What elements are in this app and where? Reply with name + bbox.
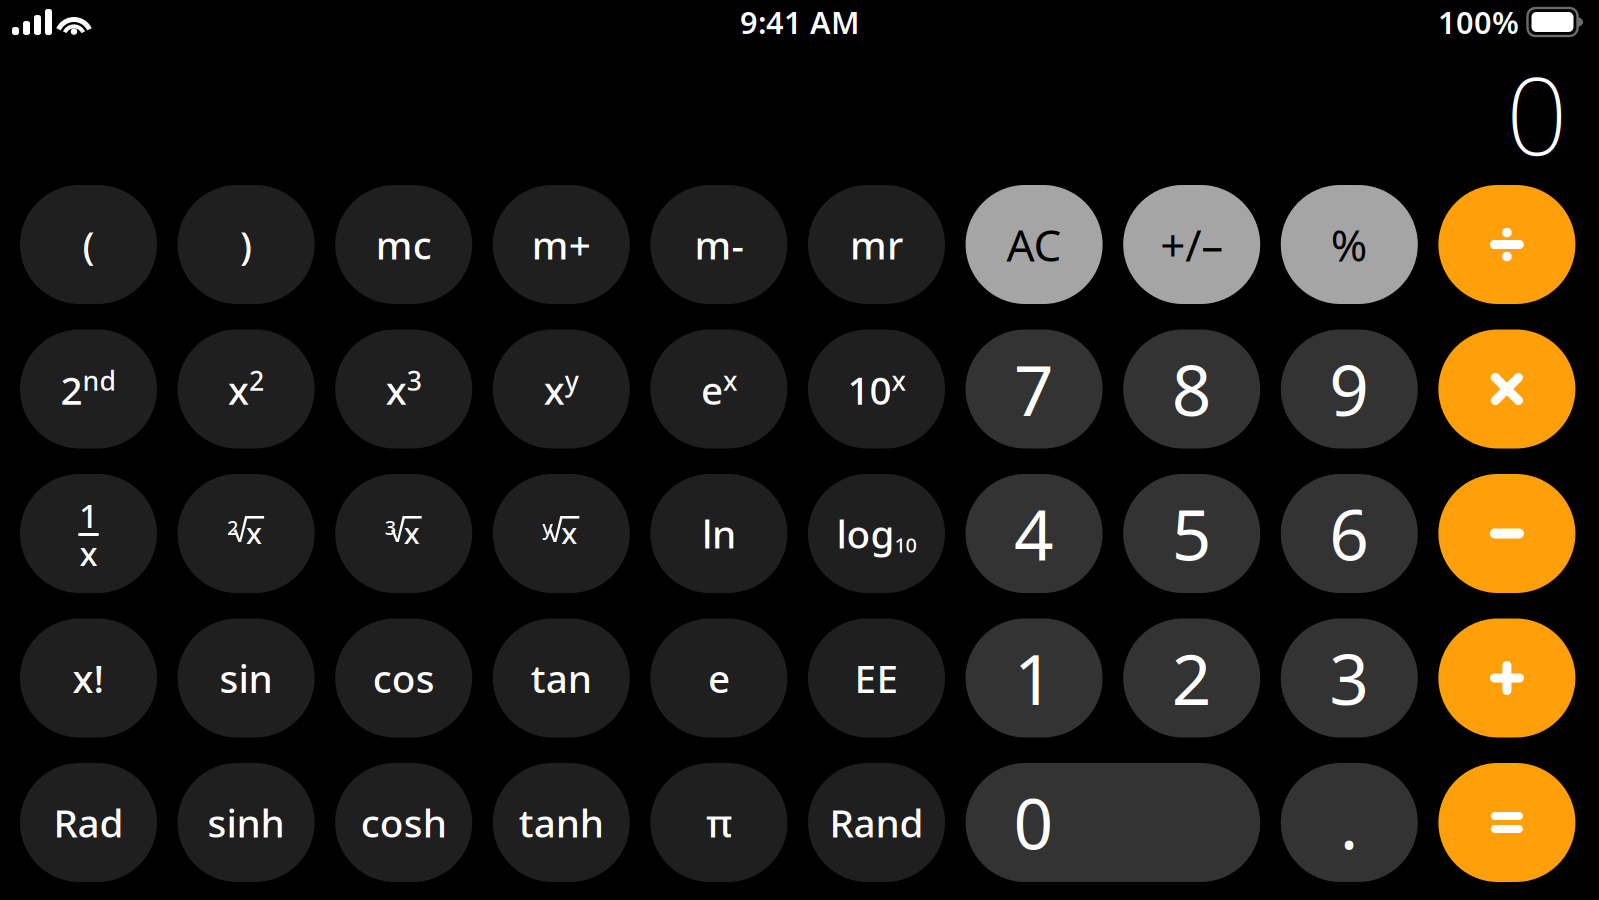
staticText: x (79, 531, 97, 575)
staticText: 9 (1329, 343, 1369, 435)
button[interactable]: cosh (335, 763, 472, 882)
staticText: log10 (836, 508, 916, 559)
staticText: x (404, 513, 420, 552)
staticText: 2 (227, 514, 238, 541)
button[interactable]: 1 (20, 474, 157, 593)
staticText: ln (702, 508, 736, 559)
staticText: m+ (532, 219, 591, 270)
staticText: 3 (385, 514, 396, 541)
staticText: m- (694, 219, 743, 270)
staticText: mc (376, 219, 432, 270)
button[interactable]: 2 (1123, 618, 1260, 737)
button[interactable]: x2 (178, 329, 315, 448)
staticText: Rand (829, 797, 923, 848)
button[interactable]: mr (808, 185, 945, 304)
button[interactable]: +/– (1123, 185, 1260, 304)
button[interactable]: 10x (808, 329, 945, 448)
staticText: . (1340, 776, 1359, 869)
button[interactable]: 3 (335, 474, 472, 593)
button[interactable]: ( (20, 185, 157, 304)
button[interactable]: . (1281, 763, 1418, 882)
staticText: x! (72, 652, 104, 704)
button[interactable]: Plus (1438, 618, 1575, 737)
staticText: tanh (519, 797, 604, 848)
button[interactable]: ex (650, 329, 787, 448)
button[interactable]: xy (493, 329, 630, 448)
staticText: y (542, 514, 553, 541)
button[interactable]: log10 (808, 474, 945, 593)
button[interactable]: x! (20, 618, 157, 737)
staticText: EE (854, 652, 898, 704)
button[interactable]: 1 (966, 618, 1103, 737)
staticText: 7 (1014, 343, 1054, 435)
button[interactable]: 5 (1123, 474, 1260, 593)
button[interactable]: sin (178, 618, 315, 737)
button[interactable]: Equals (1438, 763, 1575, 882)
staticText: ) (240, 219, 252, 270)
staticText: 3 (1329, 632, 1369, 724)
staticText: 5 (1172, 487, 1212, 580)
staticText: cos (373, 652, 435, 704)
staticText: 0 (1014, 776, 1054, 869)
staticText: 2nd (60, 363, 116, 415)
button[interactable]: 6 (1281, 474, 1418, 593)
staticText: x (561, 513, 577, 552)
staticText: x (246, 513, 262, 552)
staticText: sinh (208, 797, 285, 848)
staticText: Rad (53, 797, 123, 848)
button[interactable]: 2 (178, 474, 315, 593)
button[interactable]: π (650, 763, 787, 882)
staticText: +/– (1160, 215, 1223, 274)
button[interactable]: % (1281, 185, 1418, 304)
button[interactable]: ) (178, 185, 315, 304)
staticText: ex (701, 363, 737, 415)
button[interactable]: tanh (493, 763, 630, 882)
button[interactable]: ln (650, 474, 787, 593)
staticText: 8 (1172, 343, 1212, 435)
staticText: 1 (1014, 632, 1054, 724)
button[interactable]: tan (493, 618, 630, 737)
button[interactable]: x3 (335, 329, 472, 448)
staticText: xy (544, 363, 579, 415)
button[interactable]: Rand (808, 763, 945, 882)
staticText: % (1331, 215, 1368, 274)
staticText: ( (82, 219, 94, 270)
button[interactable]: m- (650, 185, 787, 304)
button[interactable]: y (493, 474, 630, 593)
button[interactable]: sinh (178, 763, 315, 882)
staticText: 4 (1014, 487, 1054, 580)
button[interactable]: mc (335, 185, 472, 304)
staticText: 6 (1329, 487, 1369, 580)
staticText: mr (850, 219, 903, 270)
button[interactable]: 4 (966, 474, 1103, 593)
staticText: x2 (228, 363, 264, 415)
staticText: π (706, 797, 732, 848)
staticText: 1 (79, 493, 98, 537)
staticText: 0 (1506, 42, 1568, 185)
button[interactable]: m+ (493, 185, 630, 304)
staticText: cosh (361, 797, 447, 848)
button[interactable]: 8 (1123, 329, 1260, 448)
staticText: 100% (1438, 2, 1519, 42)
button[interactable]: e (650, 618, 787, 737)
button[interactable]: cos (335, 618, 472, 737)
staticText: 9:41 AM (740, 2, 859, 42)
button[interactable]: Rad (20, 763, 157, 882)
button[interactable]: 2nd (20, 329, 157, 448)
staticText: sin (220, 652, 273, 704)
button[interactable]: AC (966, 185, 1103, 304)
button[interactable]: Multiply (1438, 329, 1575, 448)
staticText: 10x (847, 363, 905, 415)
staticText: AC (1007, 215, 1062, 274)
staticText: x3 (386, 363, 422, 415)
staticText: tan (531, 652, 592, 704)
button[interactable]: Minus (1438, 474, 1575, 593)
button[interactable]: EE (808, 618, 945, 737)
button[interactable]: 0 (966, 763, 1260, 882)
button[interactable]: 7 (966, 329, 1103, 448)
button[interactable]: 3 (1281, 618, 1418, 737)
staticText: e (708, 652, 730, 704)
button[interactable]: Divide (1438, 185, 1575, 304)
button[interactable]: 9 (1281, 329, 1418, 448)
staticText: 2 (1172, 632, 1212, 724)
